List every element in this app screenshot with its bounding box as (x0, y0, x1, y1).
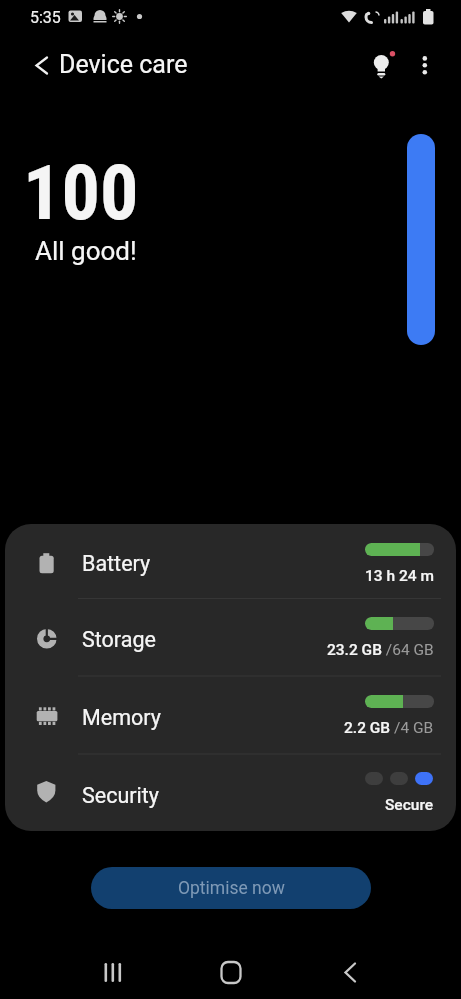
button[interactable]: Storage (5, 598, 456, 676)
staticText: All good! (35, 236, 137, 266)
staticText: Optimise now (178, 878, 285, 899)
button[interactable] (330, 942, 372, 997)
staticText: Memory (82, 705, 161, 730)
staticText: Security (82, 783, 159, 808)
button[interactable] (410, 45, 440, 85)
staticText: 5:35 (30, 8, 61, 27)
staticText: Battery (82, 551, 151, 576)
button[interactable]: Security (5, 754, 456, 831)
staticText: Secure (385, 796, 434, 814)
staticText: Device care (59, 50, 188, 79)
button[interactable] (92, 942, 134, 997)
button[interactable]: Optimise now (91, 867, 371, 909)
button[interactable]: Battery (5, 524, 456, 598)
button[interactable]: Memory (5, 676, 456, 754)
button[interactable] (210, 942, 252, 997)
staticText: 2.2 GB /4 GB (344, 719, 434, 737)
staticText: 13 h 24 m (365, 567, 434, 585)
staticText: 100 (23, 148, 139, 237)
button[interactable] (22, 51, 52, 81)
button[interactable] (360, 43, 402, 85)
staticText: 23.2 GB /64 GB (327, 641, 434, 659)
staticText: Storage (82, 627, 156, 652)
